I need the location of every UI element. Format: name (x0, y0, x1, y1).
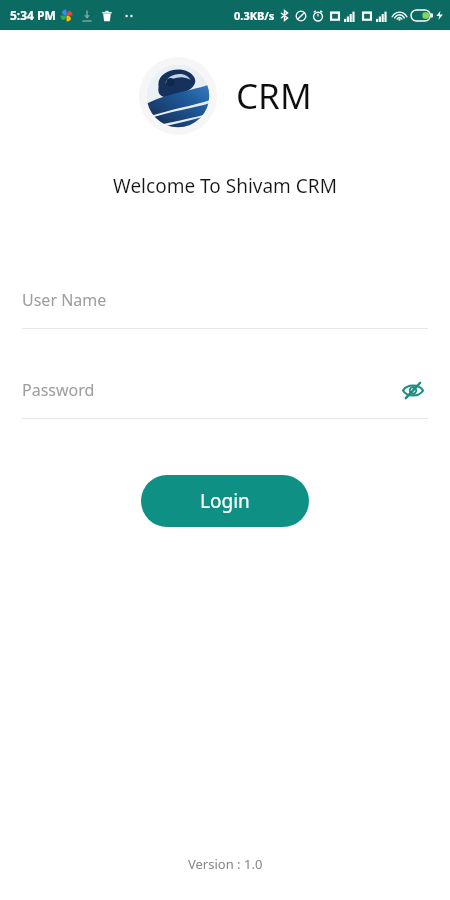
staticText: Welcome To Shivam CRM (0, 173, 450, 199)
staticText: Login (200, 488, 250, 514)
staticText: 5:34 PM (10, 7, 56, 23)
staticText: CRM (236, 72, 312, 120)
button[interactable]: Login (141, 475, 309, 527)
staticText: User Name (22, 289, 107, 311)
button[interactable]: Show password (398, 375, 428, 405)
button[interactable]: User Name (22, 285, 428, 329)
button[interactable]: Password (22, 375, 428, 419)
staticText: Version : 1.0 (188, 855, 263, 873)
staticText: Password (22, 379, 95, 401)
staticText: 0.3KB/s (234, 8, 275, 23)
